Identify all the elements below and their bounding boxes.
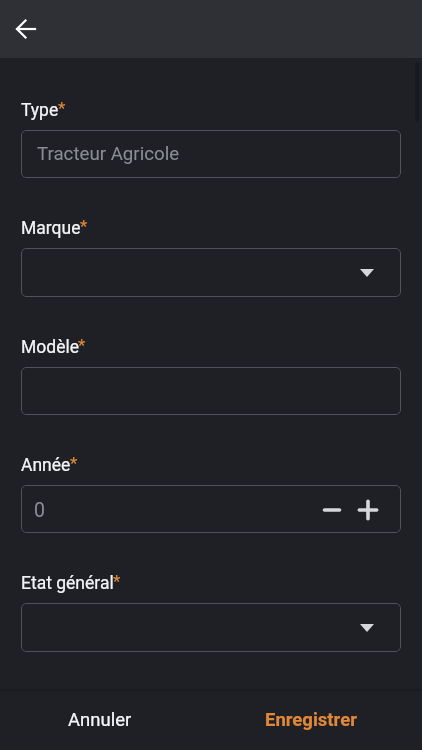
staticText: Marque — [21, 218, 81, 239]
staticText: Annuler — [68, 709, 132, 731]
staticText: * — [80, 216, 88, 236]
staticText: Type — [21, 100, 59, 121]
staticText: * — [58, 98, 66, 118]
staticText: * — [70, 453, 78, 473]
button[interactable]: Decrement — [319, 497, 345, 523]
button[interactable] — [21, 248, 401, 297]
button[interactable]: Back — [7, 10, 45, 48]
staticText: Modèle — [21, 337, 79, 358]
button[interactable]: Enregistrer — [213, 690, 409, 750]
staticText: Etat général — [21, 573, 114, 594]
button[interactable]: Increment — [355, 497, 381, 523]
staticText: * — [78, 335, 86, 355]
button[interactable] — [21, 367, 401, 415]
button[interactable]: Annuler — [2, 690, 198, 750]
staticText: * — [113, 571, 121, 591]
button[interactable]: Tracteur Agricole — [21, 130, 401, 178]
staticText: Tracteur Agricole — [37, 143, 180, 165]
staticText: Enregistrer — [265, 709, 357, 731]
button[interactable]: 0 — [21, 485, 401, 533]
button[interactable] — [21, 603, 401, 652]
staticText: 0 — [34, 499, 45, 522]
staticText: Année — [21, 455, 71, 476]
